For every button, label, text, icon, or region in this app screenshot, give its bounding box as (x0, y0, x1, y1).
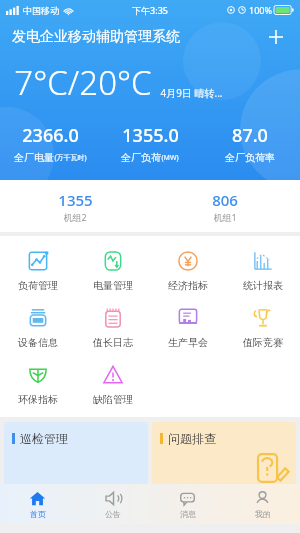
staticText: 全厂负荷 (121, 151, 161, 164)
staticText: 2366.0 (22, 123, 79, 148)
button[interactable]: 电量管理 (75, 246, 150, 295)
button[interactable]: 值长日志 (75, 303, 150, 352)
staticText: 全厂电量 (14, 151, 54, 164)
button[interactable]: 设备信息 (0, 303, 75, 352)
staticText: 1355.0 (122, 123, 179, 148)
staticText: 机组1 (213, 211, 237, 223)
button[interactable]: 806 (150, 180, 300, 232)
button[interactable]: 经济指标 (150, 246, 225, 295)
button[interactable]: 问题排查 (152, 422, 296, 484)
button[interactable]: 消息 (150, 484, 225, 524)
button[interactable]: 公告 (75, 484, 150, 524)
staticText: 4月9日 晴转... (160, 86, 223, 100)
button[interactable]: 生产早会 (150, 303, 225, 352)
staticText: 消息 (180, 509, 196, 519)
staticText: 87.0 (232, 123, 268, 148)
staticText: 公告 (105, 509, 121, 519)
button[interactable]: 负荷管理 (0, 246, 75, 295)
staticText: 全厂负荷率 (225, 151, 275, 164)
staticText: 设备信息 (18, 336, 58, 349)
button[interactable]: 值际竞赛 (225, 303, 300, 352)
staticText: 我的 (255, 509, 271, 519)
button[interactable]: 统计报表 (225, 246, 300, 295)
staticText: 电量管理 (93, 279, 133, 292)
staticText: 统计报表 (243, 279, 283, 292)
staticText: 缺陷管理 (93, 393, 133, 406)
staticText: 首页 (30, 509, 46, 519)
button[interactable]: 缺陷管理 (75, 360, 150, 409)
button[interactable]: 首页 (0, 484, 75, 524)
staticText: 1355 (58, 190, 93, 210)
staticText: 负荷管理 (18, 279, 58, 292)
staticText: 经济指标 (168, 279, 208, 292)
staticText: (MW) (161, 153, 179, 163)
staticText: 值际竞赛 (243, 336, 283, 349)
staticText: (万千瓦时) (54, 153, 87, 163)
staticText: 下午3:35 (132, 4, 168, 16)
button[interactable]: 1355 (0, 180, 150, 232)
staticText: 值长日志 (93, 336, 133, 349)
staticText: 问题排查 (168, 431, 216, 446)
button[interactable]: 巡检管理 (4, 422, 148, 484)
button[interactable]: 我的 (225, 484, 300, 524)
staticText: 7°C/20°C (14, 60, 152, 105)
staticText: 中国移动 (23, 5, 59, 16)
staticText: 巡检管理 (20, 431, 68, 446)
button[interactable]: 环保指标 (0, 360, 75, 409)
button[interactable]: Add (262, 23, 290, 51)
staticText: 生产早会 (168, 336, 208, 349)
staticText: 环保指标 (18, 393, 58, 406)
staticText: 100% (249, 4, 272, 16)
staticText: 机组2 (63, 211, 87, 223)
staticText: 806 (212, 190, 238, 210)
staticText: 发电企业移动辅助管理系统 (12, 28, 180, 46)
